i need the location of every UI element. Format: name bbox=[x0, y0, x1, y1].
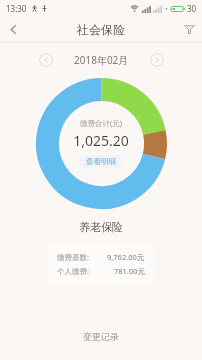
staticText: 养老保险 bbox=[0, 220, 202, 234]
button[interactable]: Previous month bbox=[38, 52, 54, 68]
button[interactable]: 缴费基数: bbox=[48, 245, 154, 283]
staticText: 781.00元 bbox=[114, 266, 145, 276]
button[interactable]: Filter bbox=[176, 16, 202, 42]
staticText: 缴费合计(元) bbox=[80, 118, 122, 128]
staticText: 查看明细 bbox=[86, 157, 116, 166]
staticText: 9,762.00元 bbox=[107, 252, 145, 262]
staticText: 1,025.20 bbox=[73, 131, 129, 150]
button[interactable]: 变更记录 bbox=[0, 327, 202, 346]
staticText: 13:30 bbox=[6, 3, 27, 14]
button[interactable]: 查看明细 bbox=[79, 155, 123, 168]
staticText: 个人缴费: bbox=[57, 266, 90, 276]
staticText: 缴费基数: bbox=[57, 252, 90, 262]
staticText: 30 bbox=[187, 3, 197, 14]
staticText: 社会保险 bbox=[77, 22, 125, 37]
button[interactable]: Next month bbox=[149, 52, 165, 68]
staticText: 2018年02月 bbox=[74, 53, 129, 67]
button[interactable]: Back bbox=[0, 16, 26, 42]
